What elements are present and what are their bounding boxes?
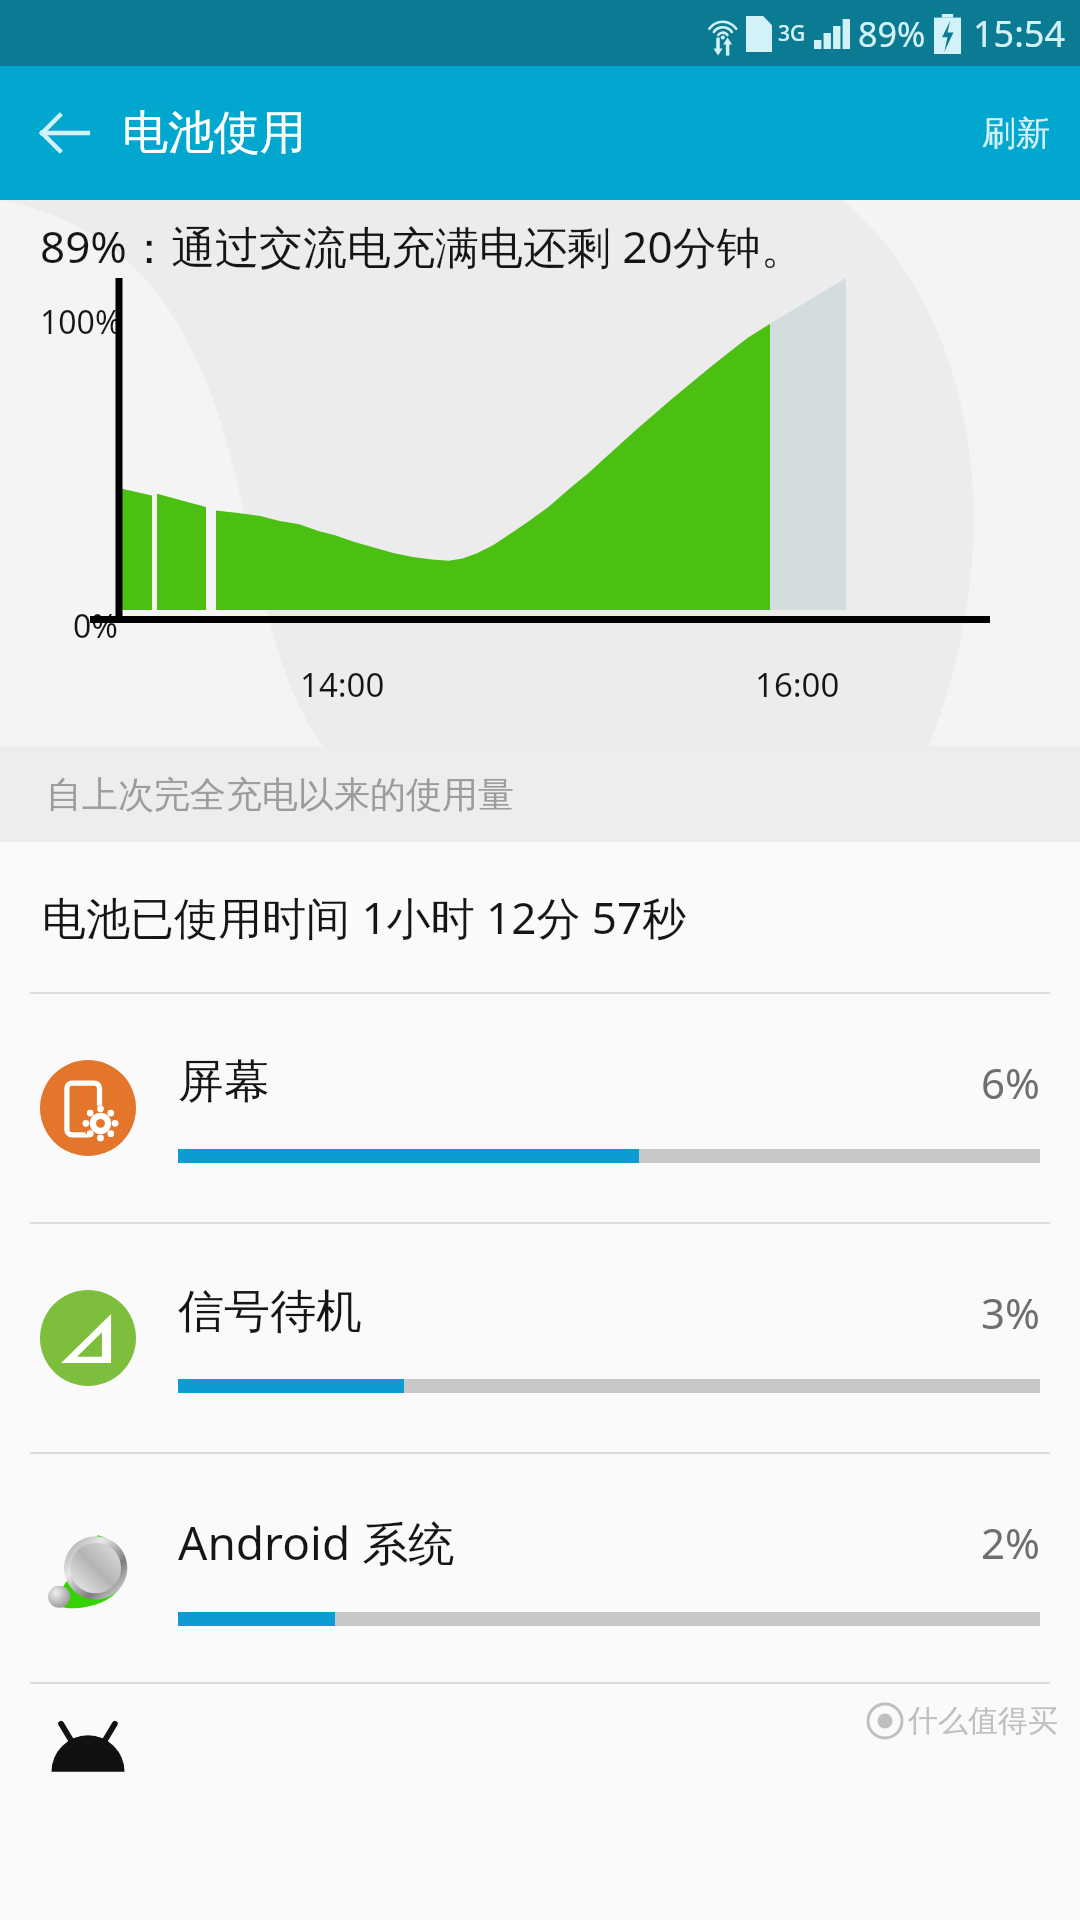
staticText: 14:00 [300, 662, 385, 707]
staticText: 信号待机 [178, 1283, 362, 1341]
staticText: 刷新 [982, 112, 1050, 155]
staticText: 2% [981, 1514, 1040, 1571]
staticText: 什么值得买 [908, 1702, 1058, 1740]
staticText: 0% [73, 604, 118, 648]
staticText: 16:00 [755, 662, 840, 707]
button[interactable]: Android 系统 [0, 1454, 1080, 1682]
staticText: 屏幕 [178, 1053, 270, 1111]
staticText: 15:54 [973, 9, 1066, 58]
button[interactable]: 信号待机 [0, 1224, 1080, 1452]
staticText: 6% [981, 1054, 1040, 1111]
staticText: 89% [858, 11, 926, 57]
staticText: 3% [981, 1284, 1040, 1341]
button[interactable]: 刷新 [952, 66, 1080, 200]
button[interactable]: 屏幕 [0, 994, 1080, 1222]
staticText: 89%：通过交流电充满电还剩 20分钟。 [40, 216, 805, 276]
staticText: 100% [40, 300, 122, 344]
staticText: 电池使用 [122, 104, 306, 162]
button[interactable]: 返回 [26, 94, 104, 172]
staticText: 电池已使用时间 1小时 12分 57秒 [42, 887, 687, 947]
staticText: 自上次完全充电以来的使用量 [46, 772, 514, 817]
staticText: 3G [778, 19, 806, 48]
staticText: Android 系统 [178, 1511, 455, 1574]
